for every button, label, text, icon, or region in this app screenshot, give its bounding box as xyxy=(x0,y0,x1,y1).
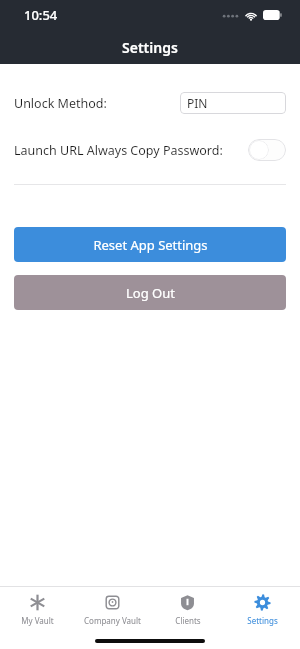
button[interactable]: Log Out xyxy=(14,275,286,310)
button[interactable]: Company Vault xyxy=(75,594,150,626)
staticText: Launch URL Always Copy Password: xyxy=(14,142,223,159)
staticText: Clients xyxy=(175,615,201,626)
staticText: 10:54 xyxy=(24,6,58,24)
staticText: Settings xyxy=(247,615,278,626)
button[interactable]: PIN xyxy=(180,92,286,114)
staticText: PIN xyxy=(187,95,208,111)
staticText: Unlock Method: xyxy=(14,95,107,112)
button[interactable]: My Vault xyxy=(0,594,75,626)
button[interactable]: Reset App Settings xyxy=(14,227,286,262)
staticText: Company Vault xyxy=(84,615,141,626)
button[interactable]: Clients xyxy=(150,594,225,626)
staticText: Reset App Settings xyxy=(93,236,208,254)
staticText: Settings xyxy=(122,38,178,57)
button[interactable]: Launch URL Always Copy Password toggle xyxy=(248,139,286,161)
button[interactable]: Settings xyxy=(225,594,300,626)
staticText: My Vault xyxy=(21,615,54,626)
staticText: Log Out xyxy=(126,284,175,302)
